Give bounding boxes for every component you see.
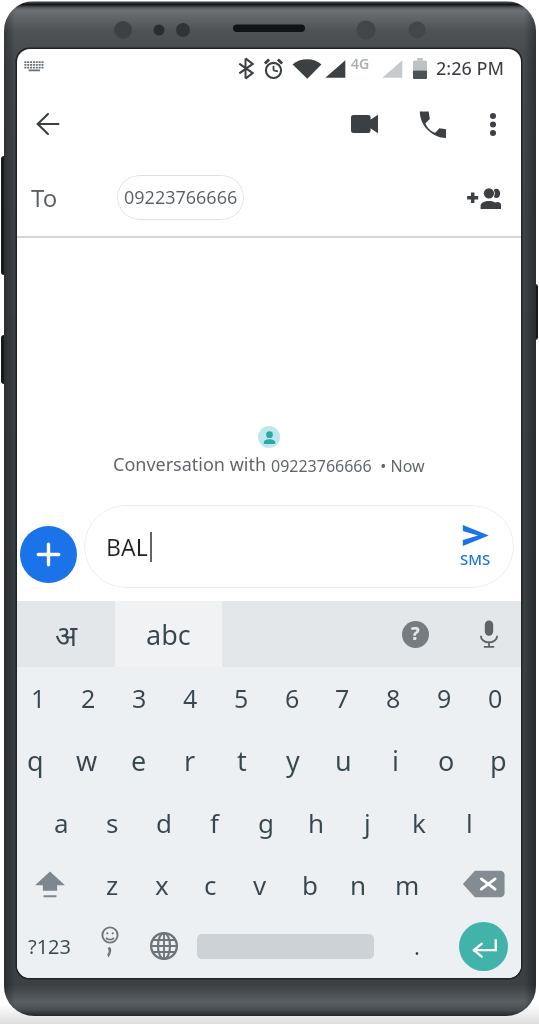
button[interactable]: 09223766666	[117, 175, 244, 220]
staticText: abc	[146, 616, 191, 653]
staticText: m	[395, 867, 420, 902]
button[interactable]: Emoji	[86, 915, 134, 977]
staticText: अ	[55, 615, 78, 654]
button[interactable]: f	[189, 791, 240, 853]
staticText: c	[204, 867, 217, 902]
button[interactable]: Video call	[340, 100, 388, 148]
button[interactable]: Voice input	[463, 608, 515, 660]
staticText: t	[237, 742, 247, 779]
button[interactable]: j	[342, 791, 393, 853]
button[interactable]: y	[267, 729, 318, 791]
staticText: 9	[437, 681, 452, 715]
button[interactable]: q	[17, 729, 61, 791]
button[interactable]: e	[113, 729, 164, 791]
staticText: k	[412, 805, 426, 840]
button[interactable]	[192, 915, 379, 977]
button[interactable]: l	[444, 791, 495, 853]
button[interactable]: w	[61, 729, 112, 791]
button[interactable]: Back	[26, 102, 70, 146]
staticText: SMS	[460, 549, 491, 569]
staticText: Conversation with	[113, 452, 271, 477]
button[interactable]: .	[393, 915, 441, 977]
staticText: 8	[386, 681, 401, 715]
button[interactable]: b	[285, 853, 334, 915]
button[interactable]: 3	[114, 667, 165, 729]
staticText: b	[302, 867, 318, 902]
button[interactable]: SMS	[444, 505, 506, 588]
staticText: p	[490, 742, 507, 779]
staticText: s	[106, 805, 119, 840]
staticText: o	[438, 742, 455, 779]
button[interactable]: a	[36, 791, 87, 853]
staticText: 6	[285, 681, 300, 715]
button[interactable]: s	[87, 791, 138, 853]
button[interactable]: 6	[267, 667, 318, 729]
staticText: 4G	[351, 54, 370, 73]
staticText: • Now	[372, 455, 425, 477]
button[interactable]: h	[291, 791, 342, 853]
button[interactable]: Attach	[20, 526, 77, 583]
staticText: v	[253, 867, 267, 902]
button[interactable]: 2	[63, 667, 114, 729]
button[interactable]: o	[421, 729, 472, 791]
button[interactable]: 7	[317, 667, 368, 729]
button[interactable]: abc	[115, 601, 222, 667]
staticText: n	[350, 867, 367, 902]
button[interactable]: Call	[408, 100, 456, 148]
button[interactable]: p	[473, 729, 521, 791]
button[interactable]: 8	[368, 667, 419, 729]
button[interactable]: z	[88, 853, 137, 915]
button[interactable]: u	[318, 729, 369, 791]
staticText: 09223766666	[124, 185, 238, 210]
staticText: 1	[31, 681, 46, 715]
staticText: 2:26 PM	[436, 56, 504, 81]
button[interactable]: v	[235, 853, 284, 915]
button[interactable]: 5	[216, 667, 267, 729]
button[interactable]: 0	[470, 667, 521, 729]
staticText: To	[31, 181, 58, 214]
button[interactable]: More options	[469, 100, 517, 148]
staticText: g	[258, 805, 274, 840]
button[interactable]: Backspace	[445, 853, 521, 915]
button[interactable]: i	[370, 729, 421, 791]
staticText: j	[364, 805, 371, 840]
button[interactable]: 9	[419, 667, 470, 729]
staticText: f	[210, 805, 219, 840]
button[interactable]: 4	[165, 667, 216, 729]
staticText: 3	[132, 681, 147, 715]
staticText: z	[106, 867, 119, 902]
button[interactable]: n	[334, 853, 383, 915]
button[interactable]: g	[240, 791, 291, 853]
staticText: l	[466, 805, 473, 840]
button[interactable]: Add people	[460, 174, 508, 222]
staticText: h	[308, 805, 325, 840]
staticText: a	[54, 805, 69, 840]
button[interactable]: 1	[17, 667, 64, 729]
staticText: 5	[234, 681, 249, 715]
button[interactable]: x	[137, 853, 186, 915]
staticText: BAL	[106, 531, 148, 562]
button[interactable]: d	[138, 791, 189, 853]
button[interactable]: r	[164, 729, 215, 791]
button[interactable]: c	[186, 853, 235, 915]
button[interactable]: Enter	[459, 922, 508, 971]
button[interactable]: ?123	[17, 915, 82, 977]
button[interactable]: Help	[389, 608, 441, 660]
button[interactable]: t	[216, 729, 267, 791]
button[interactable]: अ	[17, 601, 115, 667]
staticText: w	[76, 742, 98, 779]
staticText: i	[392, 742, 399, 779]
button[interactable]: m	[383, 853, 432, 915]
staticText: 2	[81, 681, 96, 715]
staticText: y	[286, 742, 300, 779]
staticText: 0	[488, 681, 503, 715]
staticText: 09223766666	[271, 455, 372, 477]
button[interactable]: Shift	[17, 853, 83, 915]
button[interactable]: k	[393, 791, 444, 853]
staticText: ?123	[28, 933, 71, 960]
button[interactable]: Change language	[140, 915, 188, 977]
staticText: d	[156, 805, 172, 840]
staticText: 7	[335, 681, 350, 715]
staticText: ?	[411, 621, 420, 646]
staticText: e	[131, 742, 147, 779]
